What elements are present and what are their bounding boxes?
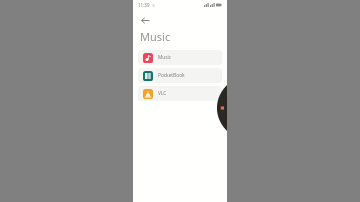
staticText: PocketBook: [158, 72, 185, 79]
staticText: Music: [158, 54, 172, 61]
button[interactable]: VLC: [138, 86, 222, 101]
button[interactable]: Back: [138, 13, 152, 27]
button[interactable]: PocketBook: [138, 68, 222, 83]
staticText: VLC: [158, 90, 167, 97]
staticText: 11:39: [138, 2, 150, 8]
button[interactable]: Music: [138, 50, 222, 65]
staticText: Music: [140, 29, 171, 44]
